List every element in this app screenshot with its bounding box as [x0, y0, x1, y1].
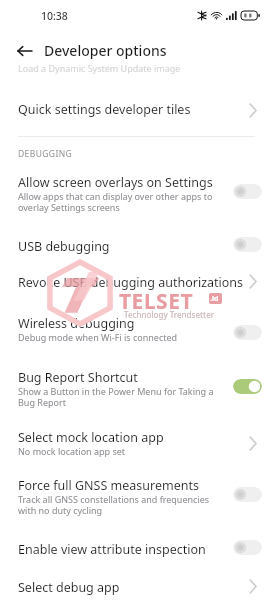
staticText: Technology Trendsetter: [124, 309, 215, 320]
button[interactable]: Revoke USB debugging authorizations: [0, 271, 273, 301]
button[interactable]: [233, 184, 262, 199]
staticText: Debug mode when Wi-Fi is connected: [18, 331, 178, 343]
button[interactable]: [233, 540, 262, 555]
staticText: 10:38: [41, 9, 68, 23]
staticText: TELSET: [119, 287, 194, 316]
staticText: Select mock location app: [18, 429, 164, 446]
staticText: Track all GNSS constellations and freque…: [18, 493, 210, 516]
button[interactable]: Enable view attribute inspection: [0, 538, 273, 568]
staticText: Allow screen overlays on Settings: [18, 174, 213, 191]
staticText: Force full GNSS measurements: [18, 477, 199, 494]
staticText: USB debugging: [18, 238, 110, 255]
staticText: Show a Button in the Power Menu for Taki…: [18, 385, 214, 408]
staticText: No mock location app set: [18, 445, 126, 457]
button[interactable]: [233, 379, 262, 394]
button[interactable]: [233, 325, 262, 340]
button[interactable]: Bug Report Shortcut: [0, 366, 273, 414]
staticText: Quick settings developer tiles: [18, 101, 191, 118]
staticText: Select debug app: [18, 579, 120, 596]
button[interactable]: Allow screen overlays on Settings: [0, 171, 273, 219]
button[interactable]: [233, 237, 262, 252]
button[interactable]: Force full GNSS measurements: [0, 474, 273, 522]
staticText: .id: [210, 294, 219, 304]
staticText: DEBUGGING: [18, 148, 73, 160]
staticText: Enable view attribute inspection: [18, 541, 206, 558]
button[interactable]: Back: [12, 38, 38, 64]
button[interactable]: Quick settings developer tiles: [0, 86, 273, 130]
staticText: Load a Dynamic System Update image: [18, 62, 181, 74]
button[interactable]: Wireless debugging: [0, 312, 273, 352]
button[interactable]: [233, 487, 262, 502]
staticText: Allow apps that can display over other a…: [18, 190, 213, 213]
staticText: Wireless debugging: [18, 315, 135, 332]
staticText: Developer options: [44, 41, 167, 60]
button[interactable]: Select debug app: [0, 576, 273, 600]
button[interactable]: Select mock location app: [0, 426, 273, 466]
staticText: Revoke USB debugging authorizations: [18, 274, 244, 291]
staticText: Bug Report Shortcut: [18, 369, 138, 386]
button[interactable]: USB debugging: [0, 235, 273, 265]
